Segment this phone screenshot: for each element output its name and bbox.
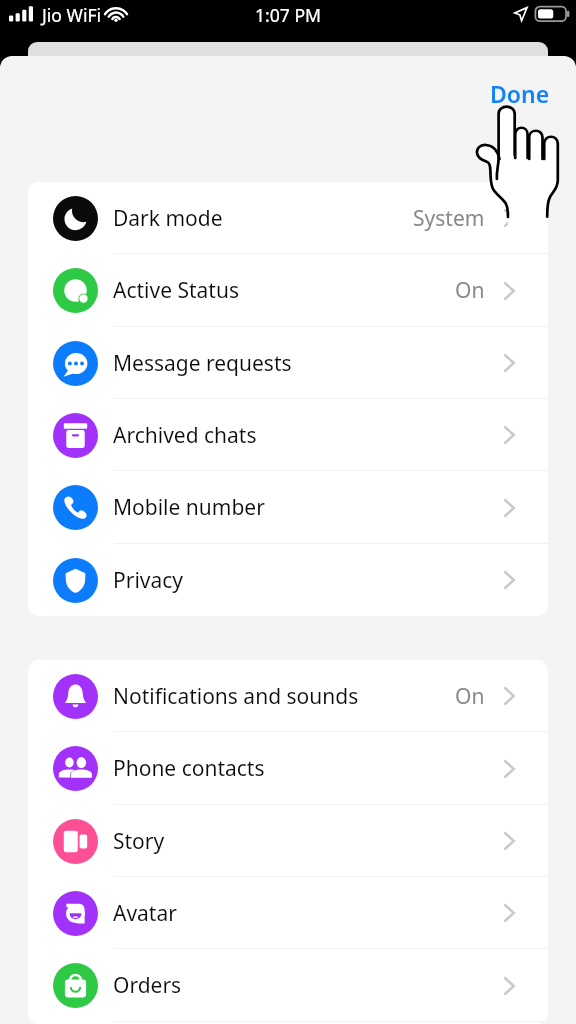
staticText: Mobile number [113,493,265,522]
staticText: Orders [113,971,182,1000]
button[interactable]: Notifications and sounds [28,660,548,732]
button[interactable]: Archived chats [28,399,548,471]
staticText: Phone contacts [113,754,265,783]
staticText: Story [113,827,165,856]
staticText: On [455,276,485,305]
staticText: Jio WiFi [42,3,102,27]
staticText: Dark mode [113,204,223,233]
staticText: Archived chats [113,421,257,450]
staticText: Active Status [113,276,239,305]
button[interactable]: Message requests [28,327,548,399]
button[interactable]: Active Status [28,254,548,327]
button[interactable]: Phone contacts [28,732,548,805]
button[interactable]: Story [28,805,548,877]
button[interactable]: Mobile number [28,471,548,544]
button[interactable]: Privacy [28,544,548,616]
other: Pointer [0,0,576,1024]
staticText: 1:07 PM [255,3,322,27]
staticText: On [455,682,485,711]
staticText: Avatar [113,899,177,928]
button[interactable]: Dark mode [28,182,548,254]
button[interactable]: Orders [28,949,548,1022]
staticText: Message requests [113,349,292,378]
staticText: System [413,204,485,233]
staticText: Done [490,78,550,109]
staticText: Privacy [113,566,184,595]
button[interactable]: Avatar [28,877,548,949]
staticText: Notifications and sounds [113,682,359,711]
button[interactable]: Done [476,70,564,117]
